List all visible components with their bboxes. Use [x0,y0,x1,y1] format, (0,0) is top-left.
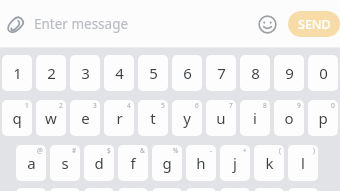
staticText: d [94,153,104,173]
staticText: + [243,146,247,155]
staticText: g [162,153,172,173]
staticText: e [81,108,90,128]
button[interactable]: o [274,100,304,136]
staticText: 7 [229,101,233,110]
button[interactable]: h [186,145,216,181]
staticText: 6 [195,101,199,110]
staticText: w [45,108,57,128]
staticText: 5 [161,101,165,110]
staticText: 8 [251,63,260,83]
button[interactable]: Enter message [34,0,255,48]
button[interactable]: d [84,145,114,181]
button[interactable]: f [118,145,148,181]
button[interactable] [186,188,216,191]
button[interactable] [254,188,284,191]
button[interactable]: t [138,100,168,136]
staticText: ) [313,146,315,155]
staticText: o [284,108,294,128]
button[interactable]: i [240,100,270,136]
button[interactable]: r [104,100,134,136]
staticText: 6 [183,63,192,83]
staticText: i [253,108,257,128]
staticText: p [318,108,328,128]
button[interactable]: e [70,100,100,136]
staticText: 1 [13,63,22,83]
button[interactable]: 5 [138,55,168,91]
button[interactable] [118,188,148,191]
button[interactable]: l [288,145,318,181]
button[interactable]: SEND [288,11,340,37]
staticText: ( [279,146,281,155]
button[interactable]: Emoji [255,12,279,36]
button[interactable]: 2 [36,55,66,91]
staticText: 9 [297,101,301,110]
button[interactable]: j [220,145,250,181]
staticText: @ [37,146,43,155]
staticText: k [265,153,274,173]
staticText: 7 [217,63,226,83]
button[interactable]: 0 [308,55,338,91]
staticText: 3 [81,63,90,83]
staticText: 1 [25,101,29,110]
staticText: u [216,108,226,128]
button[interactable] [84,188,114,191]
staticText: Enter message [34,15,129,33]
button[interactable]: 6 [172,55,202,91]
staticText: a [27,153,36,173]
button[interactable]: a [16,145,46,181]
button[interactable]: s [50,145,80,181]
staticText: 3 [93,101,97,110]
button[interactable] [16,188,46,191]
staticText: $ [107,146,111,155]
staticText: 2 [59,101,63,110]
staticText: 9 [285,63,294,83]
button[interactable]: 3 [70,55,100,91]
button[interactable]: q [2,100,32,136]
staticText: 8 [263,101,267,110]
staticText: 0 [331,101,335,110]
staticText: t [150,108,156,128]
staticText: q [12,108,22,128]
staticText: % [173,146,179,155]
button[interactable]: p [308,100,338,136]
staticText: 4 [127,101,131,110]
staticText: 5 [149,63,158,83]
staticText: # [72,146,77,155]
button[interactable] [288,188,318,191]
button[interactable] [50,188,80,191]
staticText: - [210,146,213,155]
button[interactable]: 7 [206,55,236,91]
staticText: j [233,153,237,173]
staticText: r [116,108,123,128]
staticText: y [183,108,191,128]
button[interactable]: g [152,145,182,181]
staticText: s [61,153,69,173]
button[interactable]: u [206,100,236,136]
staticText: 4 [115,63,124,83]
staticText: SEND [298,16,331,33]
button[interactable]: w [36,100,66,136]
staticText: h [196,153,206,173]
button[interactable] [220,188,250,191]
staticText: f [130,153,136,173]
button[interactable]: 9 [274,55,304,91]
button[interactable]: Attach file [3,11,29,37]
button[interactable]: y [172,100,202,136]
button[interactable]: 1 [2,55,32,91]
button[interactable]: 4 [104,55,134,91]
button[interactable] [152,188,182,191]
staticText: 2 [47,63,56,83]
staticText: 0 [319,63,328,83]
button[interactable]: 8 [240,55,270,91]
staticText: l [301,153,305,173]
staticText: & [140,146,145,155]
button[interactable]: k [254,145,284,181]
